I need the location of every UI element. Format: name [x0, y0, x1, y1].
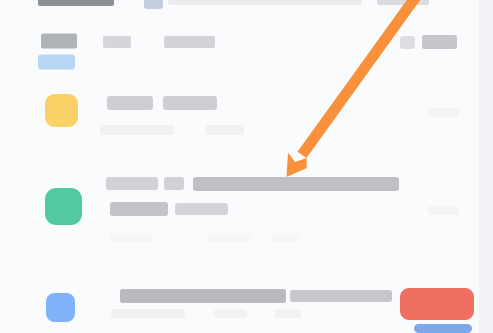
button[interactable]: Action [0, 0, 493, 333]
button[interactable] [0, 0, 493, 53]
button[interactable] [0, 0, 493, 53]
button[interactable] [0, 0, 493, 255]
button[interactable]: More [0, 0, 493, 333]
button[interactable] [0, 0, 493, 152]
button[interactable] [0, 0, 493, 74]
button[interactable] [0, 0, 493, 14]
button[interactable] [0, 0, 493, 333]
button[interactable]: Sort [0, 0, 493, 54]
